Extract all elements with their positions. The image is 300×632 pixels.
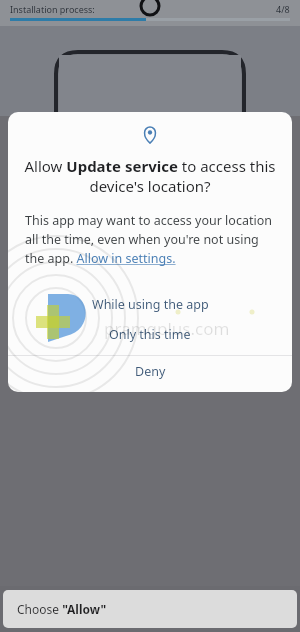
button[interactable]: Deny: [8, 356, 292, 386]
staticText: Allow Update service to access this devi…: [22, 156, 278, 196]
staticText: Deny: [135, 363, 166, 380]
staticText: Choose "Allow": [17, 601, 107, 617]
other: Location: [141, 126, 159, 144]
button[interactable]: Choose "Allow": [3, 590, 297, 628]
staticText: 4/8: [276, 3, 290, 15]
staticText: Installation process:: [10, 3, 95, 15]
staticText: Only this time: [109, 326, 191, 343]
staticText: This app may want to access your locatio…: [25, 212, 275, 267]
staticText: pramgplus.com: [104, 317, 230, 340]
staticText: While using the app: [92, 296, 209, 313]
button[interactable]: While using the app: [8, 289, 292, 319]
button[interactable]: Only this time: [8, 319, 292, 349]
